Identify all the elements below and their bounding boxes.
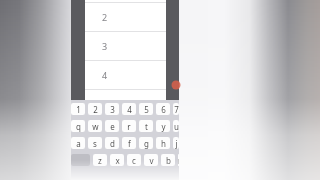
button[interactable]: h: [156, 137, 170, 149]
staticText: j: [175, 138, 178, 149]
button[interactable]: a: [71, 137, 85, 149]
button[interactable]: y: [156, 120, 170, 132]
button[interactable]: 3: [85, 31, 166, 60]
button[interactable]: z: [93, 154, 107, 166]
staticText: 2: [102, 11, 108, 23]
button[interactable]: t: [139, 120, 153, 132]
staticText: s: [93, 138, 97, 149]
staticText: 5: [144, 104, 149, 115]
staticText: 7: [174, 104, 179, 115]
staticText: w: [92, 121, 99, 132]
button[interactable]: w: [88, 120, 102, 132]
staticText: v: [149, 155, 154, 166]
button[interactable]: 5: [139, 103, 153, 115]
button[interactable]: 1: [71, 103, 85, 115]
staticText: x: [115, 155, 120, 166]
button[interactable]: f: [122, 137, 136, 149]
staticText: 3: [102, 40, 108, 52]
staticText: u: [174, 121, 179, 132]
staticText: g: [144, 138, 149, 149]
staticText: n: [178, 155, 179, 166]
button[interactable]: x: [110, 154, 124, 166]
staticText: 4: [102, 69, 108, 81]
button[interactable]: Shift: [71, 154, 90, 166]
staticText: 1: [76, 104, 81, 115]
button[interactable]: g: [139, 137, 153, 149]
button[interactable]: 4: [85, 60, 166, 89]
button[interactable]: 3: [105, 103, 119, 115]
button[interactable]: 2: [85, 2, 166, 31]
staticText: t: [145, 121, 148, 132]
staticText: 2: [93, 104, 98, 115]
button[interactable]: 4: [122, 103, 136, 115]
staticText: q: [76, 121, 81, 132]
staticText: f: [128, 138, 131, 149]
button[interactable]: n: [178, 154, 179, 166]
button[interactable]: d: [105, 137, 119, 149]
button[interactable]: v: [144, 154, 158, 166]
staticText: z: [98, 155, 102, 166]
button[interactable]: q: [71, 120, 85, 132]
staticText: 3: [110, 104, 115, 115]
button[interactable]: j: [173, 137, 179, 149]
staticText: b: [166, 155, 171, 166]
button[interactable]: 6: [156, 103, 170, 115]
button[interactable]: e: [105, 120, 119, 132]
staticText: h: [161, 138, 166, 149]
button[interactable]: s: [88, 137, 102, 149]
staticText: y: [161, 121, 166, 132]
button[interactable]: 2: [88, 103, 102, 115]
staticText: e: [110, 121, 115, 132]
staticText: 6: [161, 104, 166, 115]
staticText: 4: [127, 104, 132, 115]
staticText: d: [110, 138, 115, 149]
button[interactable]: c: [127, 154, 141, 166]
button[interactable]: 7: [173, 103, 179, 115]
staticText: a: [76, 138, 81, 149]
button[interactable]: r: [122, 120, 136, 132]
button[interactable]: b: [161, 154, 175, 166]
button[interactable]: u: [173, 120, 179, 132]
staticText: r: [127, 121, 131, 132]
staticText: c: [132, 155, 136, 166]
